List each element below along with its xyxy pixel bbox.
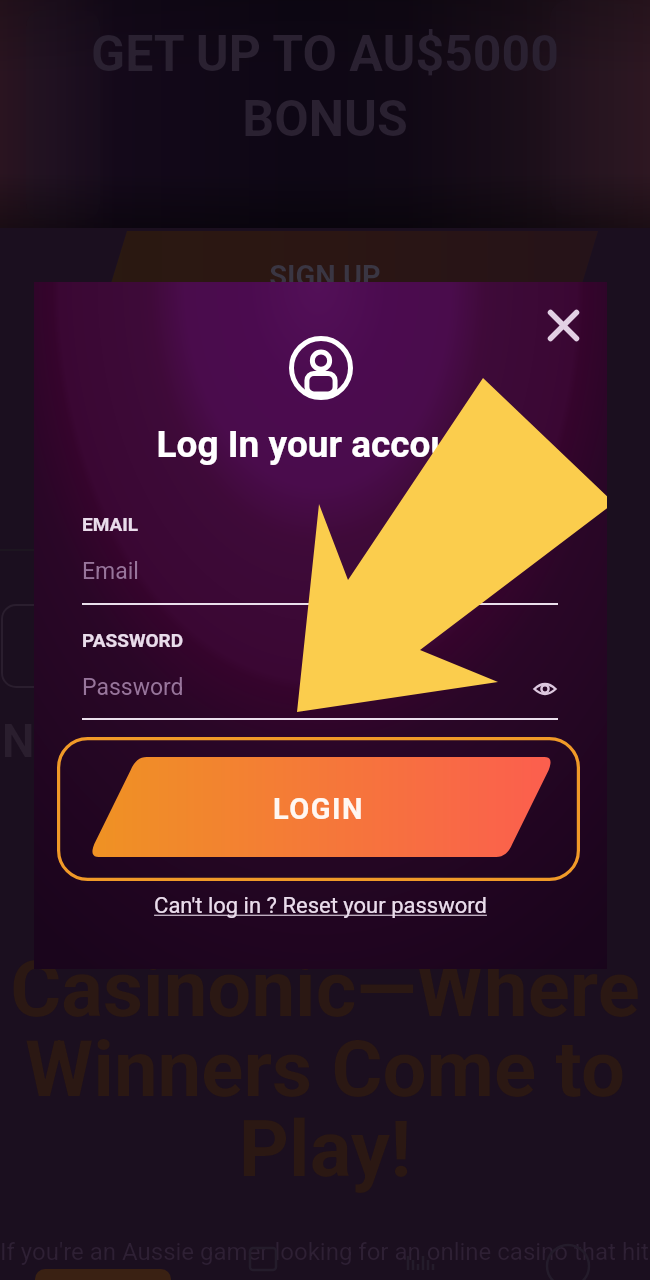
staticText: Casinonic—Where Winners Come to Play! — [0, 944, 650, 1195]
staticText: Log In your account — [34, 423, 607, 466]
staticText: If you're an Aussie gamer looking for an… — [0, 1238, 650, 1266]
staticText: LOGIN — [273, 792, 364, 826]
button[interactable]: Slots — [402, 1238, 442, 1278]
button[interactable]: Cards — [244, 1238, 284, 1278]
button[interactable]: Close — [548, 310, 579, 341]
button[interactable]: Profile — [545, 1234, 591, 1280]
button[interactable] — [35, 1269, 171, 1280]
button[interactable]: Show password — [529, 673, 561, 705]
staticText: PASSWORD — [82, 629, 184, 651]
staticText: GET UP TO AU$5000 BONUS — [0, 25, 650, 148]
button[interactable]: Can't log in ? Reset your password — [34, 893, 607, 919]
staticText: Email — [82, 558, 139, 585]
staticText: NO — [2, 714, 67, 768]
staticText: EMAIL — [82, 513, 139, 535]
button[interactable]: LOGIN — [57, 737, 580, 881]
staticText: Password — [82, 674, 184, 701]
staticText: SIGN UP — [0, 259, 650, 293]
